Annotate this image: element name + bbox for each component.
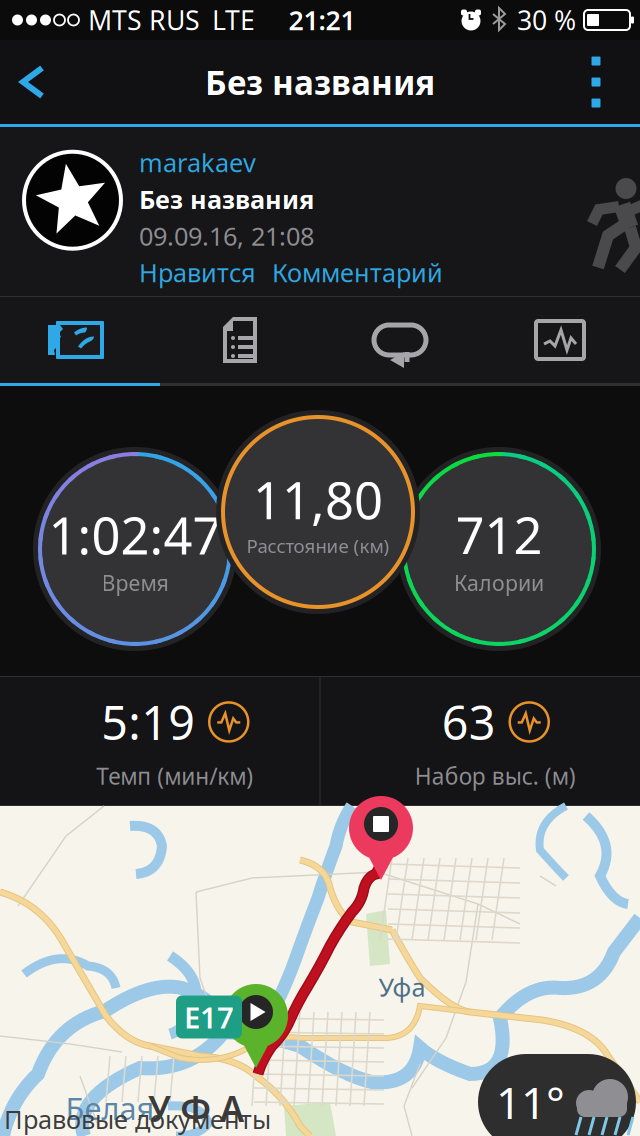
staticText: Время (101, 568, 168, 597)
button[interactable]: More options (564, 40, 628, 124)
staticText: Расстояние (км) (246, 533, 389, 558)
staticText: 1:02:47 (48, 501, 221, 568)
staticText: Набор выс. (м) (415, 761, 576, 791)
staticText: Без названия (139, 182, 314, 216)
button[interactable]: Laps (320, 297, 480, 383)
button[interactable]: Back (6, 52, 60, 112)
staticText: Темп (мин/км) (96, 761, 253, 791)
staticText: Уфа (378, 970, 425, 1004)
staticText: 11° (496, 1073, 565, 1131)
staticText: Без названия (205, 60, 435, 104)
staticText: 21:21 (288, 2, 355, 38)
button[interactable]: Комментарий (272, 256, 443, 289)
staticText: Правовые документы (4, 1102, 271, 1136)
button[interactable]: Graphs (480, 297, 640, 383)
staticText: 712 (455, 501, 542, 568)
staticText: Комментарий (272, 256, 443, 289)
staticText: 5:19 (101, 691, 195, 753)
staticText: E17 (184, 997, 234, 1036)
staticText: MTS RUS (88, 2, 200, 38)
button[interactable]: Details (160, 297, 320, 383)
staticText: У Ф А (148, 1084, 244, 1132)
staticText: Калории (454, 568, 544, 597)
staticText: 09.09.16, 21:08 (139, 219, 314, 253)
staticText: 63 (442, 691, 496, 753)
staticText: Нравится (139, 256, 256, 289)
staticText: marakaev (139, 146, 256, 179)
staticText: 30 % (517, 2, 576, 38)
button[interactable]: Map (0, 297, 160, 383)
staticText: 11,80 (253, 466, 383, 533)
button[interactable]: Нравится (139, 256, 256, 289)
staticText: Белая (65, 1088, 154, 1128)
staticText: LTE (212, 2, 255, 38)
